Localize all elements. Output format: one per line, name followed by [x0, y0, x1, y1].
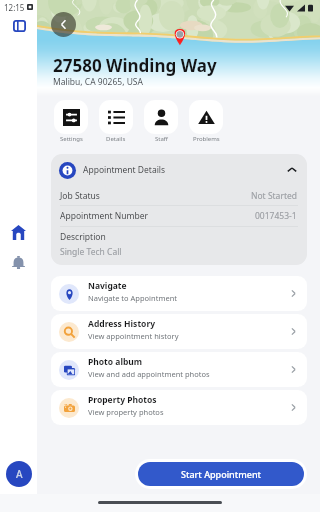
staticText: Address History: [88, 318, 156, 330]
button[interactable]: Appointment Details: [51, 154, 307, 186]
staticText: View property photos: [88, 407, 164, 417]
button[interactable]: Settings: [54, 100, 88, 143]
button[interactable]: Navigate: [51, 276, 307, 311]
button[interactable]: Account: [6, 461, 32, 487]
staticText: Details: [106, 135, 126, 143]
staticText: Settings: [60, 135, 83, 143]
staticText: Photo album: [88, 356, 143, 368]
staticText: Navigate to Appointment: [88, 293, 177, 303]
staticText: A: [16, 467, 23, 481]
button[interactable]: Problems: [189, 100, 223, 143]
button[interactable]: Details: [99, 100, 133, 143]
button[interactable]: Address History: [51, 314, 307, 349]
staticText: Staff: [155, 135, 168, 143]
button[interactable]: Start Appointment: [138, 462, 304, 486]
staticText: Start Appointment: [181, 468, 261, 480]
staticText: Not Started: [251, 190, 297, 202]
staticText: Appointment Number: [60, 210, 149, 222]
staticText: Description: [60, 231, 106, 243]
button[interactable]: Photo album: [51, 352, 307, 387]
staticText: Single Tech Call: [60, 246, 122, 258]
button[interactable]: Back: [51, 12, 76, 37]
button[interactable]: Notifications: [6, 250, 31, 275]
button[interactable]: Staff: [144, 100, 178, 143]
button[interactable]: Toggle navigation panel: [7, 14, 31, 38]
staticText: Appointment Details: [83, 164, 166, 176]
staticText: View and add appointment photos: [88, 369, 210, 379]
staticText: 27580 Winding Way: [53, 54, 217, 77]
staticText: Job Status: [60, 190, 100, 202]
staticText: Property Photos: [88, 394, 157, 406]
staticText: Navigate: [88, 280, 127, 292]
staticText: Problems: [193, 135, 220, 143]
staticText: 0017453-1: [255, 210, 297, 222]
staticText: 12:15: [4, 2, 25, 13]
button[interactable]: Property Photos: [51, 390, 307, 425]
staticText: View appointment history: [88, 331, 179, 341]
button[interactable]: Home: [6, 220, 31, 245]
staticText: Malibu, CA 90265, USA: [53, 76, 143, 88]
